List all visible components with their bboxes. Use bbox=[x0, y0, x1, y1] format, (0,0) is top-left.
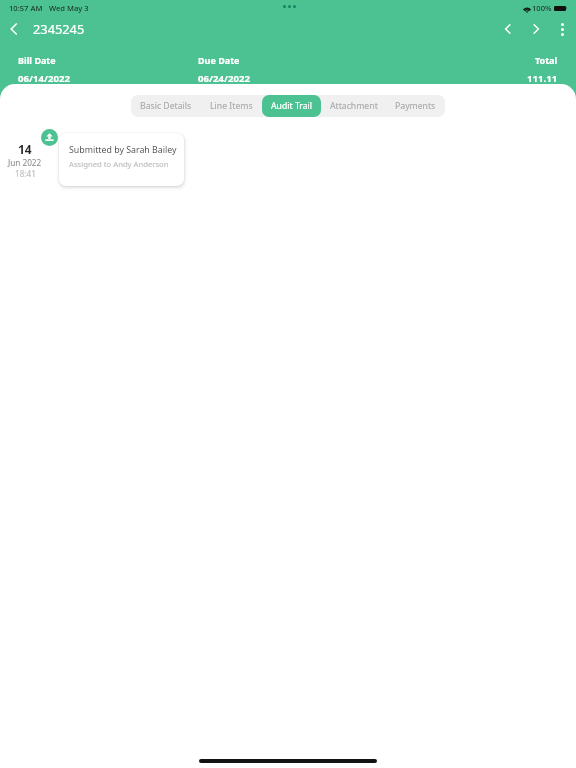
staticText: Payments bbox=[395, 100, 436, 112]
button[interactable]: Audit Trail bbox=[262, 95, 321, 117]
staticText: 100% bbox=[532, 3, 552, 13]
staticText: Due Date bbox=[198, 54, 240, 66]
staticText: Audit Trail bbox=[271, 100, 313, 112]
staticText: Total bbox=[535, 54, 558, 66]
staticText: Attachment bbox=[330, 100, 378, 112]
button[interactable]: Payments bbox=[386, 95, 445, 117]
button[interactable]: Next bbox=[522, 15, 550, 43]
staticText: 14 bbox=[18, 141, 32, 157]
staticText: 18:41 bbox=[15, 168, 36, 179]
button[interactable]: Basic Details bbox=[131, 95, 201, 117]
staticText: Jun 2022 bbox=[8, 157, 42, 168]
staticText: Submitted by Sarah Bailey bbox=[69, 144, 177, 156]
button[interactable]: Attachment bbox=[321, 95, 386, 117]
staticText: 2345245 bbox=[33, 20, 85, 37]
button[interactable]: More options bbox=[548, 15, 576, 43]
button[interactable]: Previous bbox=[494, 15, 522, 43]
staticText: Line Items bbox=[210, 100, 253, 112]
staticText: Bill Date bbox=[18, 54, 56, 66]
staticText: Wed May 3 bbox=[49, 3, 89, 13]
staticText: 06/14/2022 bbox=[18, 72, 70, 85]
staticText: 06/24/2022 bbox=[198, 72, 250, 85]
button[interactable]: Submitted by Sarah Bailey bbox=[59, 133, 184, 186]
button[interactable]: Line Items bbox=[201, 95, 262, 117]
staticText: 111.11 bbox=[527, 72, 558, 85]
staticText: 10:57 AM bbox=[9, 3, 43, 13]
button[interactable]: Back bbox=[0, 15, 28, 43]
staticText: Assigned to Andy Anderson bbox=[69, 159, 169, 169]
staticText: Basic Details bbox=[140, 100, 192, 112]
